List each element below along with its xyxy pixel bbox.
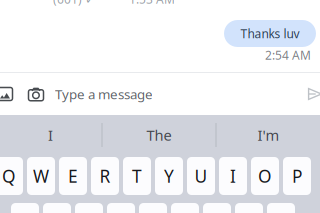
- staticText: O: [258, 164, 272, 187]
- button[interactable]: Send: [303, 73, 320, 115]
- button[interactable]: K: [235, 203, 263, 213]
- staticText: R: [99, 164, 110, 187]
- button[interactable]: H: [171, 203, 199, 213]
- button[interactable]: I: [0, 120, 101, 150]
- staticText: P: [292, 164, 302, 187]
- button[interactable]: Q: [0, 157, 23, 195]
- staticText: W: [33, 164, 49, 187]
- button[interactable]: W: [27, 157, 55, 195]
- button[interactable]: P: [283, 157, 311, 195]
- button[interactable]: I'm: [216, 120, 320, 150]
- button[interactable]: A: [11, 203, 39, 213]
- button[interactable]: L: [267, 203, 295, 213]
- staticText: Q: [2, 164, 16, 187]
- staticText: T: [132, 164, 142, 187]
- staticText: Type a message: [55, 85, 153, 103]
- staticText: I: [48, 125, 53, 145]
- staticText: E: [68, 164, 78, 187]
- staticText: 1:53 AM: [129, 0, 175, 7]
- button[interactable]: E: [59, 157, 87, 195]
- staticText: (601) ✓: [53, 0, 95, 7]
- button[interactable]: Gallery: [0, 73, 18, 115]
- button[interactable]: Type a message: [55, 73, 301, 115]
- staticText: I'm: [257, 125, 279, 145]
- button[interactable]: F: [107, 203, 135, 213]
- staticText: U: [194, 164, 207, 187]
- button[interactable]: R: [91, 157, 119, 195]
- staticText: 2:54 AM: [265, 47, 311, 63]
- button[interactable]: G: [139, 203, 167, 213]
- button[interactable]: Y: [155, 157, 183, 195]
- button[interactable]: O: [251, 157, 279, 195]
- button[interactable]: I: [219, 157, 247, 195]
- button[interactable]: S: [43, 203, 71, 213]
- staticText: The: [146, 125, 171, 145]
- staticText: I: [230, 164, 236, 187]
- staticText: Thanks luv: [240, 25, 299, 41]
- staticText: Y: [164, 164, 174, 187]
- button[interactable]: Thanks luv: [224, 20, 316, 47]
- button[interactable]: The: [102, 120, 215, 150]
- button[interactable]: T: [123, 157, 151, 195]
- button[interactable]: Camera: [22, 73, 50, 115]
- button[interactable]: D: [75, 203, 103, 213]
- button[interactable]: U: [187, 157, 215, 195]
- button[interactable]: J: [203, 203, 231, 213]
